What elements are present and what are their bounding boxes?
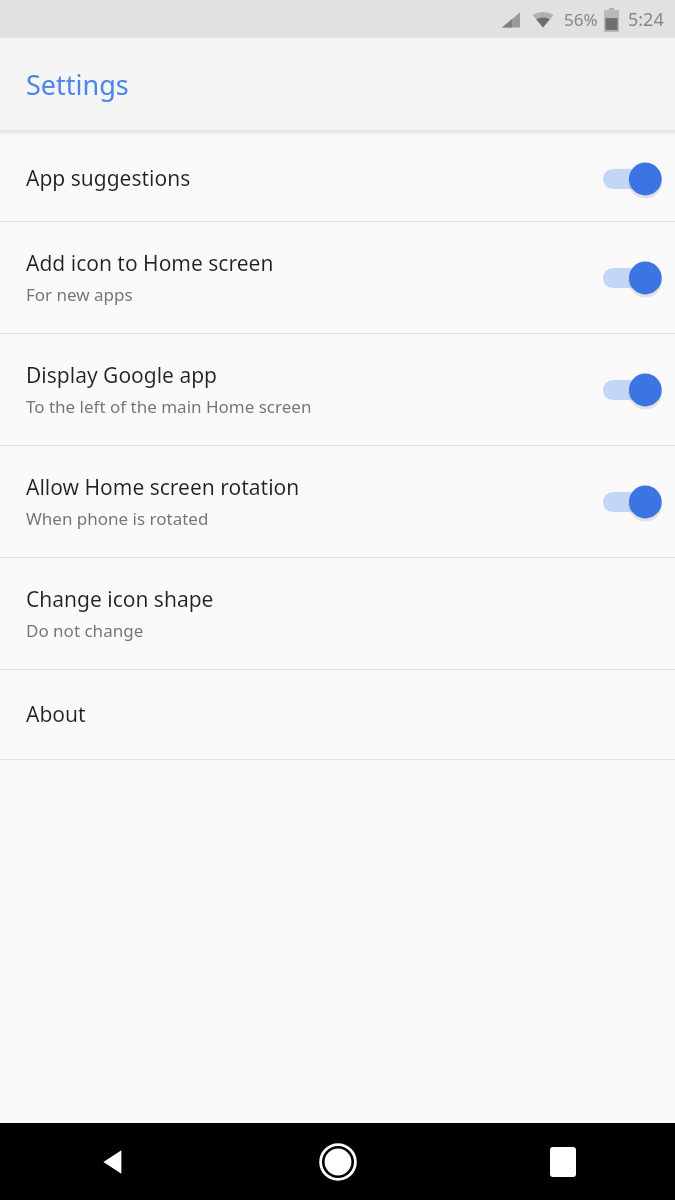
staticText: Settings — [26, 66, 129, 103]
staticText: Display Google app — [26, 361, 218, 390]
button[interactable]: Display Google app — [0, 334, 675, 445]
button[interactable]: Allow Home screen rotation — [0, 446, 675, 557]
staticText: For new apps — [26, 283, 133, 306]
staticText: 5:24 — [628, 7, 664, 32]
button[interactable]: Home — [225, 1123, 450, 1200]
button[interactable]: Toggle — [603, 484, 655, 520]
button[interactable]: App suggestions — [0, 136, 675, 221]
staticText: Allow Home screen rotation — [26, 473, 300, 502]
button[interactable]: Toggle — [603, 161, 655, 197]
staticText: To the left of the main Home screen — [26, 395, 312, 418]
button[interactable]: Toggle — [603, 260, 655, 296]
staticText: When phone is rotated — [26, 507, 209, 530]
button[interactable]: Back — [0, 1123, 225, 1200]
staticText: 56% — [564, 8, 598, 31]
staticText: Change icon shape — [26, 585, 214, 614]
staticText: Do not change — [26, 619, 144, 642]
staticText: App suggestions — [26, 164, 191, 193]
button[interactable]: Toggle — [603, 372, 655, 408]
button[interactable]: About — [0, 670, 675, 759]
staticText: Add icon to Home screen — [26, 249, 274, 278]
staticText: About — [26, 700, 86, 729]
button[interactable]: Add icon to Home screen — [0, 222, 675, 333]
button[interactable]: Recent apps — [450, 1123, 675, 1200]
button[interactable]: Change icon shape — [0, 558, 675, 669]
